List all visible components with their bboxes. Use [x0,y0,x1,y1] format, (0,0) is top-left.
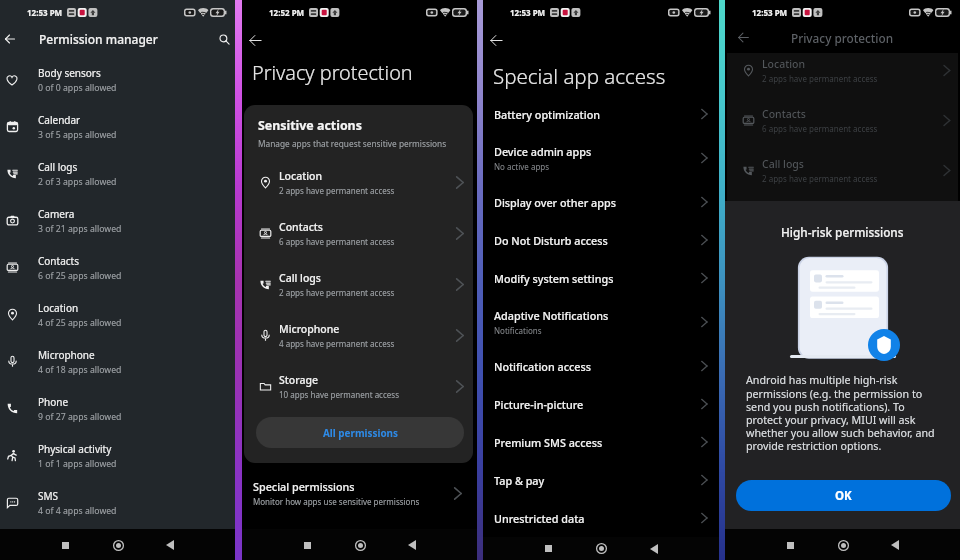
staticText: 10 apps have permanent access [279,389,399,400]
button[interactable]: Battery optimization [483,95,719,133]
staticText: 6 apps have permanent access [279,236,395,247]
button[interactable]: Back [641,537,667,560]
staticText: 2 apps have permanent access [762,173,878,184]
button[interactable]: Do Not Disturb access [483,221,719,259]
staticText: Battery optimization [494,107,601,122]
button[interactable]: Device admin apps [483,133,719,183]
staticText: 12:53 PM [510,7,546,18]
button[interactable]: Tap & pay [483,461,719,499]
button[interactable]: Premium SMS access [483,423,719,461]
staticText: 4 of 4 apps allowed [38,505,117,517]
button[interactable]: All permissions [256,417,464,448]
staticText: Tap & pay [494,473,545,488]
staticText: No active apps [494,161,550,172]
staticText: 3 of 5 apps allowed [38,129,117,141]
button[interactable]: Home [588,537,614,560]
button[interactable]: Picture-in-picture [483,385,719,423]
button[interactable]: Contacts [0,244,235,291]
staticText: Privacy protection [252,59,413,86]
button[interactable]: Storage [244,361,473,412]
staticText: Microphone [279,322,340,336]
staticText: Phone [38,395,69,409]
button[interactable]: Modify system settings [483,259,719,297]
button[interactable]: Microphone [244,310,473,361]
button[interactable]: Phone [0,385,235,432]
staticText: 2 apps have permanent access [762,73,878,84]
button[interactable]: Search [213,22,235,56]
staticText: Manage apps that request sensitive permi… [258,138,447,149]
staticText: Body sensors [38,66,101,80]
button[interactable]: Back [483,22,509,58]
button[interactable]: Contacts [244,208,473,259]
staticText: Permission manager [39,31,158,47]
button[interactable]: Location [0,291,235,338]
staticText: 12:52 PM [269,7,305,18]
staticText: Call logs [38,160,78,174]
staticText: 3 of 21 apps allowed [38,223,122,235]
staticText: All permissions [323,426,398,439]
button[interactable]: Call logs [0,150,235,197]
button[interactable]: Recents [52,532,78,558]
button[interactable]: Adaptive Notifications [483,297,719,347]
staticText: 0 of 0 apps allowed [38,82,117,94]
staticText: Contacts [762,107,806,121]
button[interactable]: Recents [535,537,561,560]
staticText: 9 of 27 apps allowed [38,411,122,423]
staticText: 2 of 3 apps allowed [38,176,117,188]
button[interactable]: Physical activity [0,432,235,479]
staticText: 4 apps have permanent access [279,338,395,349]
staticText: Modify system settings [494,271,614,286]
staticText: Location [38,301,79,315]
button[interactable]: Camera [0,197,235,244]
staticText: SMS [38,489,59,503]
button[interactable]: Home [347,532,373,558]
staticText: Do Not Disturb access [494,233,608,248]
button[interactable]: Contacts [727,95,958,145]
staticText: 12:53 PM [752,7,788,18]
button[interactable]: Calendar [0,103,235,150]
staticText: Adaptive Notifications [494,308,609,323]
staticText: Notifications [494,325,542,336]
staticText: Call logs [279,271,321,285]
button[interactable]: Recents [294,532,320,558]
button[interactable]: SMS [0,479,235,526]
button[interactable]: Call logs [244,259,473,310]
button[interactable]: Microphone [0,338,235,385]
staticText: 1 of 1 apps allowed [38,458,117,470]
button[interactable]: Back [0,22,20,56]
staticText: High-risk permissions [781,224,904,240]
staticText: 4 of 18 apps allowed [38,364,122,376]
button[interactable]: Display over other apps [483,183,719,221]
button[interactable]: Body sensors [0,56,235,103]
button[interactable]: Location [244,157,473,208]
button[interactable]: Back [242,22,268,58]
staticText: Unrestricted data [494,511,585,526]
staticText: 6 of 25 apps allowed [38,270,122,282]
button[interactable]: Special permissions [242,477,477,509]
button[interactable]: Back [157,532,183,558]
button[interactable]: Back [399,532,425,558]
staticText: Call logs [762,157,804,171]
button[interactable]: Home [105,532,131,558]
staticText: Contacts [38,254,79,268]
staticText: Contacts [279,220,323,234]
staticText: Location [762,57,806,71]
staticText: Physical activity [38,442,112,456]
staticText: 4 of 25 apps allowed [38,317,122,329]
button[interactable]: Unrestricted data [483,499,719,537]
button[interactable]: Home [830,532,856,558]
button[interactable]: Notification access [483,347,719,385]
button[interactable]: Back [730,22,757,53]
staticText: Premium SMS access [494,435,603,450]
staticText: Camera [38,207,75,221]
staticText: Storage [279,373,318,387]
staticText: Android has multiple high-risk permissio… [746,373,939,453]
button[interactable]: Back [882,532,908,558]
button[interactable]: OK [736,480,951,511]
staticText: Display over other apps [494,195,616,210]
staticText: Privacy protection [791,30,894,46]
button[interactable]: Call logs [727,145,958,195]
button[interactable]: Location [727,53,958,95]
button[interactable]: Recents [777,532,803,558]
staticText: Special app access [493,62,666,90]
